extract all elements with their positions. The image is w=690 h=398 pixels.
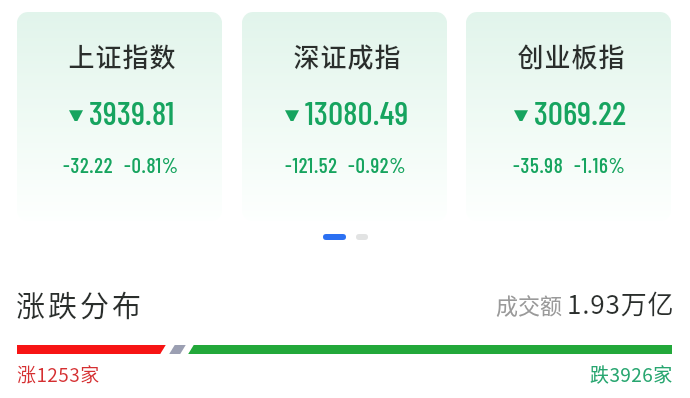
staticText: -32.22 <box>63 152 114 177</box>
staticText: 13080.49 <box>305 92 409 132</box>
staticText: 3069.22 <box>534 92 627 132</box>
staticText: 涨1253家 <box>17 360 100 388</box>
staticText: -121.52 <box>285 152 338 177</box>
staticText: -0.92% <box>348 152 407 177</box>
staticText: 成交额 <box>496 288 563 320</box>
staticText: 深证成指 <box>245 37 447 75</box>
button[interactable]: 创业板指 <box>466 12 671 221</box>
button[interactable]: Page 2 of 2 <box>356 234 368 240</box>
button[interactable]: 深证成指 <box>242 12 447 221</box>
button[interactable]: Page 1 of 2, selected <box>323 234 346 240</box>
staticText: 跌3926家 <box>590 360 673 388</box>
staticText: 3939.81 <box>89 92 175 132</box>
staticText: 涨跌分布 <box>16 283 145 325</box>
staticText: 1.93万亿 <box>567 284 675 322</box>
staticText: -35.98 <box>513 152 564 177</box>
staticText: 上证指数 <box>20 37 222 75</box>
staticText: 创业板指 <box>469 37 671 75</box>
staticText: -1.16% <box>574 152 626 177</box>
staticText: -0.81% <box>124 152 179 177</box>
button[interactable]: 上证指数 <box>17 12 222 221</box>
